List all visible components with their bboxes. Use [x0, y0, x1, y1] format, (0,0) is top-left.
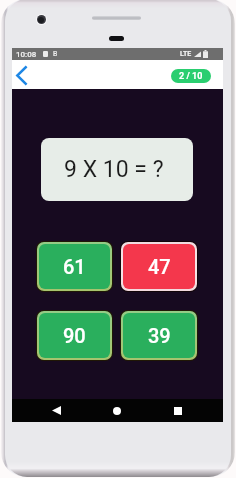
staticText: 9 X 10 = ? [64, 156, 164, 183]
staticText: 39 [148, 324, 171, 347]
staticText: LTE [180, 50, 192, 58]
button[interactable]: Home [103, 399, 131, 422]
button[interactable]: Back [12, 60, 38, 89]
button[interactable]: 47 [123, 244, 195, 289]
button[interactable]: 90 [39, 313, 110, 358]
button[interactable]: Recent apps [164, 399, 192, 422]
staticText: 10:08 [16, 50, 37, 59]
button[interactable]: Back [42, 399, 70, 422]
staticText: 61 [63, 255, 86, 278]
button[interactable]: 2 / 10 [171, 69, 211, 83]
staticText: 2 / 10 [179, 71, 203, 82]
staticText: 90 [63, 324, 86, 347]
staticText: 47 [148, 255, 171, 278]
button[interactable]: 61 [39, 244, 110, 289]
staticText: B [53, 50, 58, 58]
button[interactable]: 39 [123, 313, 195, 358]
